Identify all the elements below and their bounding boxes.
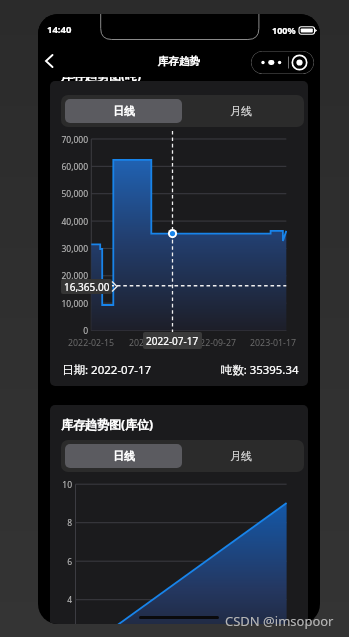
staticText: 60,000 [50, 161, 88, 173]
staticText: 日期: 2022-07-17 [62, 362, 152, 377]
staticText: 20,000 [50, 270, 88, 282]
staticText: 日线 [113, 104, 135, 118]
staticText: 50,000 [50, 188, 88, 200]
staticText: 月线 [230, 104, 252, 118]
staticText: 库存趋势 [158, 55, 200, 68]
staticText: 4 [50, 594, 72, 606]
staticText: 吨数: 35395.34 [221, 362, 299, 377]
staticText: 2022-09-27 [187, 337, 239, 349]
staticText: 40,000 [50, 216, 88, 228]
staticText: 10,000 [50, 298, 88, 310]
button[interactable]: 日线 [65, 444, 182, 468]
staticText: 2022-02-15 [65, 337, 117, 349]
staticText: 月线 [230, 449, 252, 463]
staticText: 70,000 [50, 134, 88, 146]
staticText: 8 [50, 517, 72, 529]
staticText: 14:40 [47, 23, 72, 36]
staticText: 0 [50, 325, 88, 337]
staticText: CSDN @imsopoor [225, 612, 334, 630]
button[interactable]: 日线 [65, 99, 182, 123]
button[interactable]: More options [251, 51, 314, 74]
staticText: 16,365.00 [64, 280, 110, 294]
staticText: 库存趋势图(吨) [61, 77, 142, 81]
staticText: 10 [50, 479, 72, 491]
staticText: 库存趋势图(库位) [61, 416, 154, 432]
button[interactable]: 月线 [182, 444, 300, 468]
staticText: 100% [272, 24, 296, 36]
staticText: 30,000 [50, 243, 88, 255]
staticText: 日线 [113, 449, 135, 463]
staticText: 6 [50, 556, 72, 568]
staticText: 2022-05-21 [126, 337, 178, 349]
button[interactable]: Back [38, 49, 62, 73]
staticText: 2023-01-17 [247, 337, 299, 349]
staticText: 2022-07-17 [146, 334, 199, 348]
button[interactable]: 月线 [182, 99, 300, 123]
